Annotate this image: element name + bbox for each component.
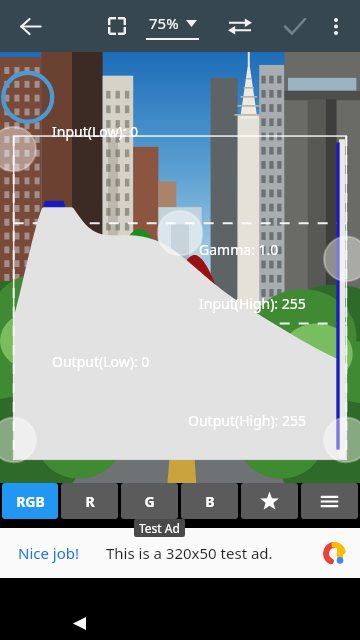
button[interactable]: R bbox=[61, 483, 118, 519]
button[interactable]: Fit to screen bbox=[96, 5, 138, 47]
staticText: 75% bbox=[149, 13, 179, 33]
button[interactable]: B bbox=[181, 483, 238, 519]
button[interactable]: Back bbox=[60, 606, 98, 640]
button[interactable]: Menu bbox=[301, 483, 358, 519]
staticText: This is a 320x50 test ad. bbox=[106, 543, 273, 563]
staticText: R bbox=[85, 492, 95, 511]
button[interactable]: More options bbox=[316, 6, 356, 46]
staticText: Input(High): 255 bbox=[199, 294, 306, 313]
button[interactable]: Favorites bbox=[241, 483, 298, 519]
staticText: Output(High): 255 bbox=[188, 411, 307, 430]
staticText: G bbox=[144, 492, 155, 511]
button[interactable]: Back bbox=[8, 4, 52, 48]
staticText: B bbox=[205, 492, 215, 511]
button[interactable]: G bbox=[121, 483, 178, 519]
button[interactable]: Apply bbox=[272, 4, 316, 48]
staticText: Gamma: 1.0 bbox=[199, 240, 279, 259]
staticText: RGB bbox=[16, 492, 45, 511]
button[interactable]: Nice job! bbox=[0, 528, 360, 578]
button[interactable]: Compare before and after bbox=[218, 4, 262, 48]
staticText: Test Ad bbox=[139, 520, 180, 536]
staticText: Output(Low): 0 bbox=[52, 352, 150, 371]
button[interactable]: 75% bbox=[146, 4, 199, 48]
staticText: Input(Low): 0 bbox=[52, 122, 139, 141]
staticText: Nice job! bbox=[18, 543, 80, 563]
button[interactable]: RGB bbox=[2, 483, 58, 519]
